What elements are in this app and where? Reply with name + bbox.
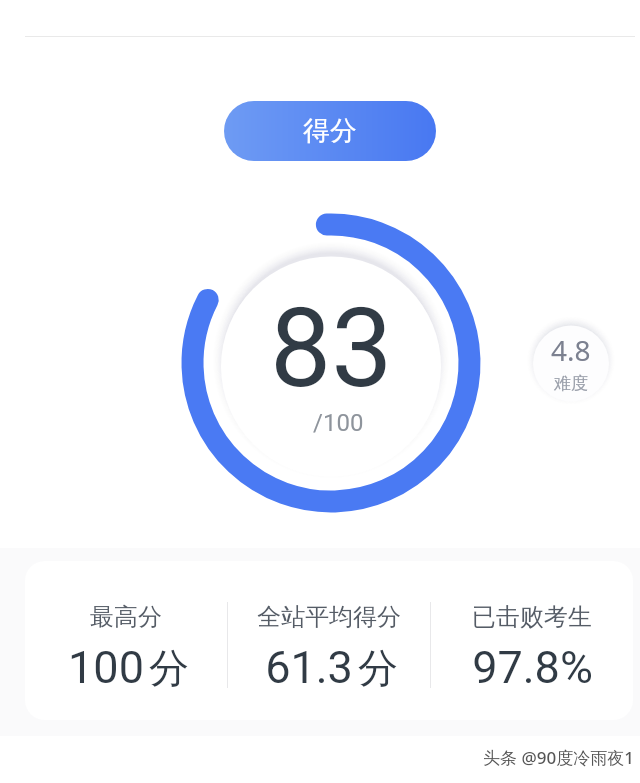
staticText: 头条 @90度冷雨夜1 (483, 746, 634, 769)
staticText: 最高分 (90, 602, 162, 632)
button[interactable]: 4.8 (515, 306, 627, 418)
staticText: 97.8% (472, 641, 593, 694)
staticText: 得分 (303, 114, 357, 148)
staticText: 已击败考生 (472, 602, 592, 632)
staticText: 分 (149, 643, 189, 693)
staticText: 100 (68, 641, 144, 694)
staticText: 全站平均得分 (257, 602, 401, 632)
staticText: 分 (358, 643, 398, 693)
button[interactable]: 得分 (224, 101, 436, 161)
staticText: 难度 (554, 373, 588, 394)
staticText: 4.8 (551, 331, 591, 369)
staticText: 83 (270, 285, 393, 413)
staticText: 61.3 (265, 641, 353, 694)
staticText: /100 (313, 409, 364, 437)
